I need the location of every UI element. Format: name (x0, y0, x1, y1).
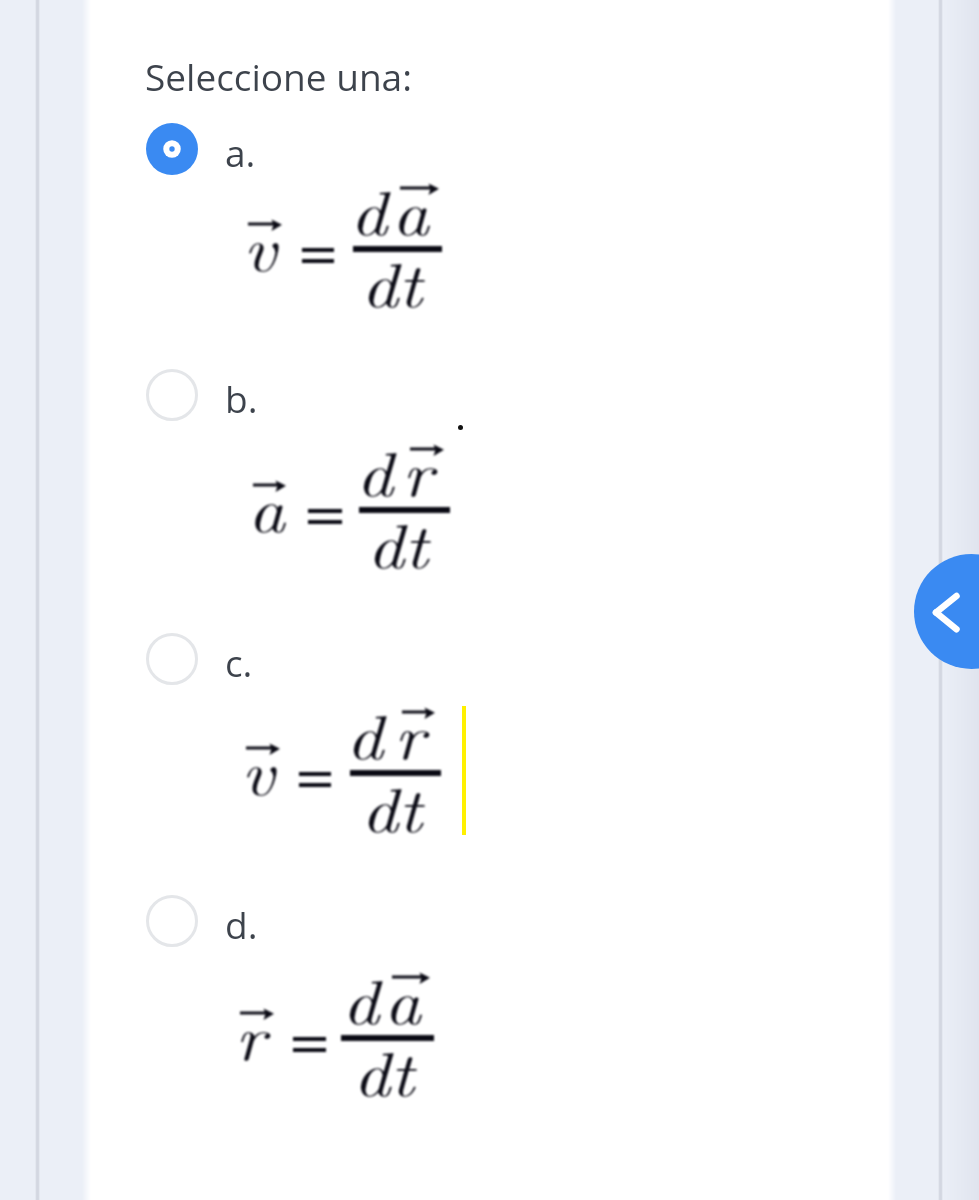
staticText: r (235, 990, 267, 1078)
staticText: a (248, 462, 285, 550)
staticText: r (394, 689, 426, 777)
staticText: b. (225, 373, 258, 423)
staticText: d (346, 689, 383, 777)
staticText: d (350, 165, 387, 253)
staticText: r (402, 426, 434, 514)
button[interactable]: Previous page (914, 554, 979, 669)
staticText: v (243, 201, 277, 289)
staticText: a (384, 954, 421, 1042)
button[interactable]: c. (146, 633, 786, 685)
staticText: dt (361, 762, 423, 850)
button[interactable]: d. (146, 895, 786, 947)
staticText: a. (225, 127, 256, 177)
staticText: v (241, 725, 275, 813)
staticText: Seleccione una: (145, 51, 413, 101)
staticText: d. (225, 899, 258, 949)
staticText: dt (367, 498, 429, 586)
staticText: dt (353, 1026, 415, 1114)
staticText: d (342, 954, 379, 1042)
staticText: d (356, 426, 393, 514)
staticText: c. (225, 637, 253, 687)
button[interactable]: a. (146, 123, 786, 175)
button[interactable]: b. (146, 369, 786, 421)
staticText: a (392, 165, 429, 253)
staticText: dt (361, 237, 423, 325)
